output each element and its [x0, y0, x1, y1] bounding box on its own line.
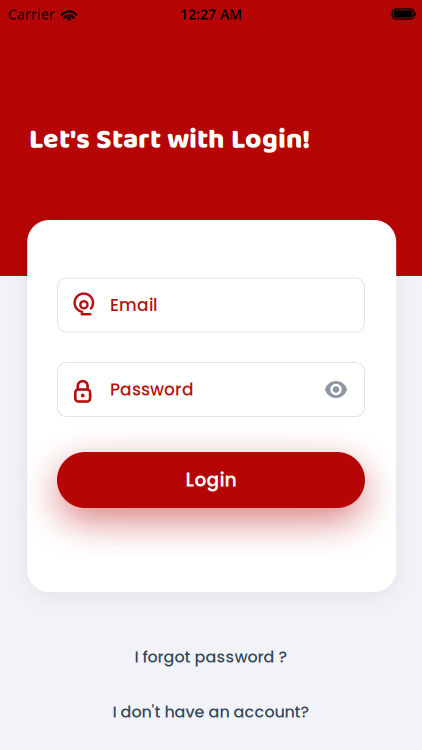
- staticText: Password: [110, 378, 194, 401]
- staticText: Login: [185, 467, 236, 493]
- button[interactable]: I don't have an account?: [112, 701, 309, 723]
- staticText: Email: [110, 293, 157, 317]
- staticText: I forgot password ?: [134, 646, 287, 668]
- staticText: Let's Start with Login!: [29, 117, 310, 163]
- button[interactable]: Show password: [324, 380, 348, 398]
- button[interactable]: I forgot password ?: [134, 646, 287, 668]
- staticText: I don't have an account?: [112, 701, 309, 723]
- button[interactable]: Login: [57, 452, 365, 508]
- staticText: 12:27 AM: [180, 4, 242, 24]
- staticText: Carrier: [8, 4, 55, 24]
